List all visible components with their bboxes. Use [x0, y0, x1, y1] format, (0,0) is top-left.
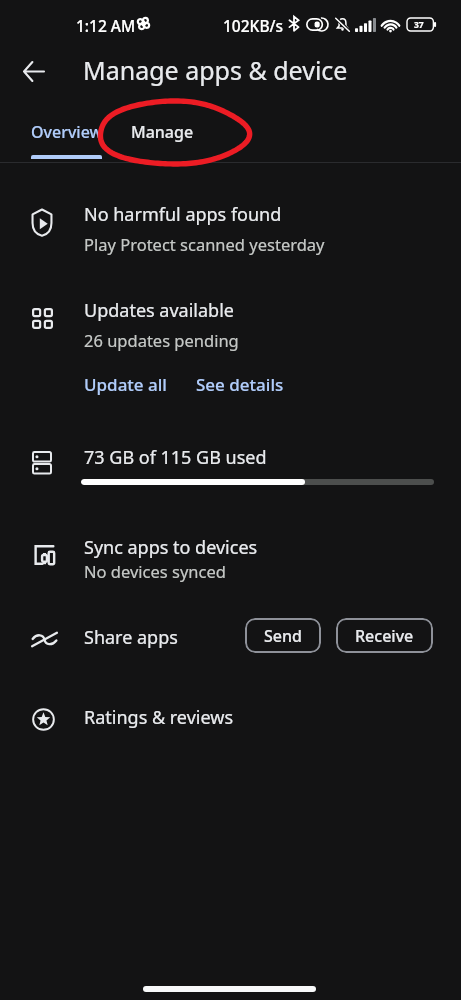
staticText: No harmful apps found: [84, 202, 282, 227]
staticText: Manage apps & device: [83, 53, 348, 87]
staticText: No devices synced: [84, 560, 226, 582]
button[interactable]: No harmful apps found: [0, 192, 461, 262]
button[interactable]: Share apps: [0, 611, 461, 667]
staticText: Manage: [131, 121, 194, 143]
staticText: Ratings & reviews: [84, 705, 234, 730]
staticText: Send: [264, 625, 302, 647]
button[interactable]: Overview: [0, 104, 134, 159]
button[interactable]: Updates available: [0, 288, 461, 398]
staticText: 1:12 AM: [76, 15, 136, 36]
staticText: 73 GB of 115 GB used: [84, 445, 267, 470]
button[interactable]: Sync apps to devices: [0, 526, 461, 596]
staticText: 26 updates pending: [84, 329, 239, 351]
staticText: 37: [414, 19, 424, 31]
staticText: Overview: [31, 121, 103, 143]
staticText: Receive: [355, 625, 414, 647]
button[interactable]: Send: [245, 618, 321, 653]
staticText: Update all: [84, 373, 167, 396]
button[interactable]: Receive: [336, 618, 433, 653]
button[interactable]: 73 GB of 115 GB used: [0, 438, 461, 498]
button[interactable]: Back: [13, 51, 54, 92]
staticText: Play Protect scanned yesterday: [84, 233, 325, 255]
staticText: Sync apps to devices: [84, 535, 258, 560]
staticText: Share apps: [84, 625, 178, 650]
staticText: 102KB/s: [223, 15, 284, 36]
button[interactable]: Manage: [128, 104, 196, 159]
button[interactable]: Ratings & reviews: [0, 691, 461, 745]
staticText: See details: [196, 373, 284, 396]
staticText: Updates available: [84, 298, 234, 323]
button[interactable]: See details: [194, 373, 286, 396]
button[interactable]: Update all: [82, 373, 169, 396]
